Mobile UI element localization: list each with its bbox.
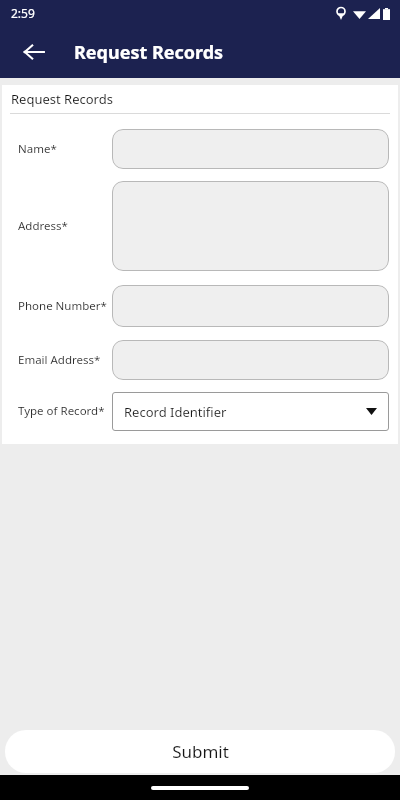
button[interactable]: Back <box>12 30 56 74</box>
button[interactable]: Record Identifier <box>112 392 389 431</box>
staticText: Address* <box>18 218 112 234</box>
button[interactable] <box>112 340 389 380</box>
staticText: Type of Record* <box>18 403 112 419</box>
staticText: 2:59 <box>11 5 35 21</box>
staticText: Request Records <box>74 40 224 65</box>
staticText: Name* <box>18 141 112 157</box>
staticText: Phone Number* <box>18 298 112 314</box>
button[interactable] <box>112 285 389 327</box>
staticText: Record Identifier <box>124 403 366 421</box>
button[interactable]: Submit <box>5 730 395 773</box>
staticText: Request Records <box>11 90 113 108</box>
staticText: Submit <box>172 740 229 763</box>
button[interactable] <box>112 181 389 271</box>
button[interactable] <box>112 129 389 169</box>
staticText: Email Address* <box>18 352 112 368</box>
